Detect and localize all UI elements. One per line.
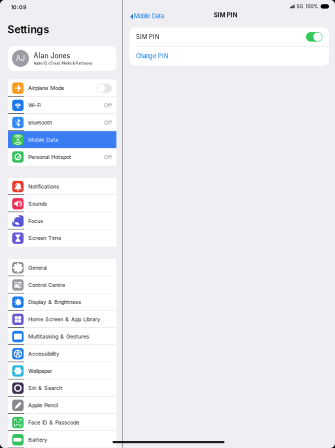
staticText: 5G <box>297 3 304 9</box>
staticText: 100% <box>306 3 319 9</box>
staticText: Airplane Mode <box>28 85 64 91</box>
staticText: Mobile Data <box>28 136 58 143</box>
staticText: Apple Pencil <box>28 402 58 409</box>
button[interactable]: Multitasking & Gestures <box>8 328 116 345</box>
staticText: Change PIN <box>136 53 168 60</box>
staticText: 10:09 <box>11 4 26 11</box>
staticText: Bluetooth <box>28 119 52 126</box>
button[interactable]: SIM PIN <box>129 27 329 46</box>
staticText: Off <box>104 102 112 109</box>
button[interactable]: Mobile Data <box>123 11 164 22</box>
staticText: Siri & Search <box>28 385 62 391</box>
staticText: Wallpaper <box>28 368 52 374</box>
button[interactable]: Focus <box>8 212 116 229</box>
staticText: Personal Hotspot <box>28 154 71 160</box>
button[interactable]: Personal Hotspot <box>8 148 116 165</box>
staticText: Control Centre <box>28 282 65 288</box>
button[interactable]: Face ID & Passcode <box>8 414 116 431</box>
staticText: Sounds <box>28 200 47 207</box>
button[interactable]: Accessibility <box>8 345 116 362</box>
staticText: Off <box>104 154 112 160</box>
button[interactable]: Screen Time <box>8 229 116 247</box>
button[interactable]: Home Screen & App Library <box>8 311 116 328</box>
button[interactable]: Airplane Mode <box>8 79 116 97</box>
staticText: General <box>28 264 47 271</box>
staticText: Apple ID, iCloud, Media & Purchases <box>33 61 92 65</box>
staticText: Notifications <box>28 183 59 190</box>
button[interactable]: General <box>8 259 116 276</box>
staticText: Accessibility <box>28 350 59 357</box>
button[interactable]: Wi-Fi <box>8 97 116 114</box>
staticText: Wi-Fi <box>28 102 41 109</box>
staticText: Home Screen & App Library <box>28 316 100 323</box>
staticText: AJ <box>16 54 25 63</box>
button[interactable]: Change PIN <box>129 47 329 65</box>
staticText: Face ID & Passcode <box>28 419 79 426</box>
staticText: Focus <box>28 218 43 224</box>
staticText: Multitasking & Gestures <box>28 333 89 340</box>
staticText: Off <box>104 119 112 126</box>
staticText: Display & Brightness <box>28 299 81 305</box>
button[interactable]: Apple Pencil <box>8 397 116 414</box>
button[interactable]: Display & Brightness <box>8 293 116 311</box>
button[interactable]: AJ <box>8 46 116 71</box>
staticText: Mobile Data <box>134 13 164 20</box>
staticText: Settings <box>7 23 49 36</box>
button[interactable]: Siri & Search <box>8 379 116 397</box>
button[interactable]: Bluetooth <box>8 114 116 131</box>
button[interactable]: Sounds <box>8 195 116 212</box>
staticText: Screen Time <box>28 235 61 241</box>
staticText: SIM PIN <box>214 11 238 19</box>
button[interactable]: Notifications <box>8 178 116 195</box>
button[interactable]: Mobile Data <box>8 131 116 148</box>
button[interactable]: Wallpaper <box>8 362 116 379</box>
staticText: Alan Jones <box>33 52 70 60</box>
button[interactable]: Battery <box>8 431 116 448</box>
staticText: SIM PIN <box>136 33 159 40</box>
staticText: Battery <box>28 436 47 443</box>
button[interactable]: Control Centre <box>8 276 116 293</box>
